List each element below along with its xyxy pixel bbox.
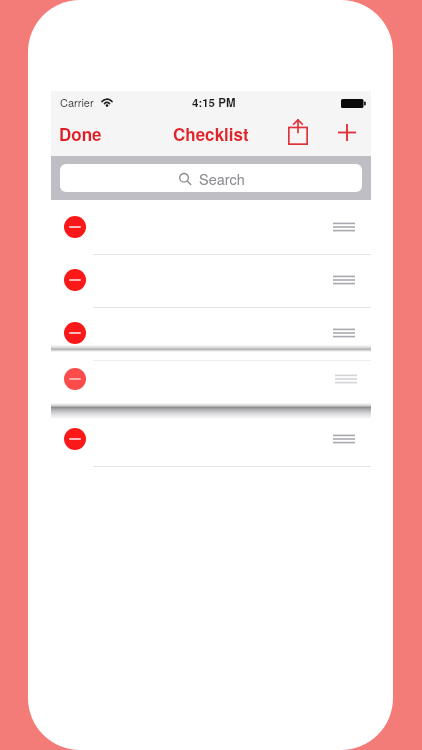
other: Delete item xyxy=(64,269,86,291)
other: Reorder item xyxy=(333,274,355,286)
other: Reorder item xyxy=(333,433,355,445)
button[interactable]: Delete item xyxy=(51,200,371,253)
staticText: Search xyxy=(199,168,245,189)
staticText: Checklist xyxy=(173,122,249,146)
other: Delete item xyxy=(64,216,86,238)
button[interactable]: Search xyxy=(60,164,362,192)
staticText: 4:15 PM xyxy=(192,94,236,110)
button[interactable]: Add item xyxy=(331,116,363,149)
other: Reorder item xyxy=(333,327,355,339)
staticText: Carrier xyxy=(60,94,94,110)
button[interactable]: Done xyxy=(51,114,110,154)
other: Reorder item xyxy=(333,221,355,233)
staticText: Done xyxy=(59,122,102,146)
button[interactable]: Delete item xyxy=(51,253,371,307)
button[interactable]: Delete item xyxy=(51,307,371,358)
other: Delete item xyxy=(64,322,86,344)
other: Delete item xyxy=(64,368,86,390)
button[interactable]: Delete item xyxy=(51,420,371,457)
button[interactable]: Delete item xyxy=(51,352,371,403)
button[interactable]: Share xyxy=(281,114,315,150)
other: Reorder item xyxy=(335,373,357,385)
other: Delete item xyxy=(64,428,86,450)
